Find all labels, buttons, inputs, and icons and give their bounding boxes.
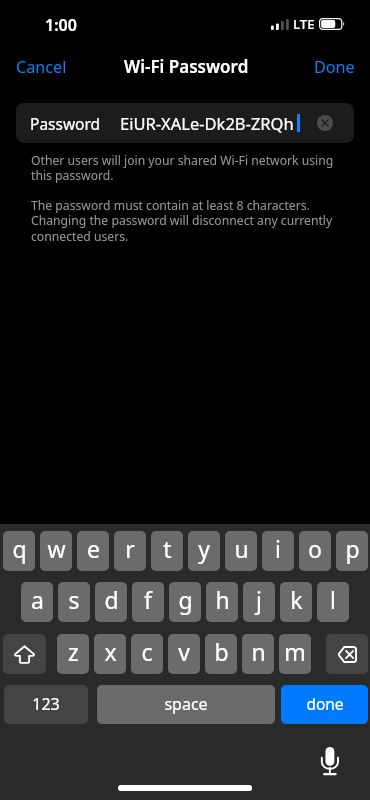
button[interactable]: f	[132, 582, 164, 622]
staticText: g	[178, 584, 193, 615]
button[interactable]: m	[279, 634, 311, 674]
button[interactable]: c	[131, 634, 163, 674]
staticText: Done	[314, 56, 355, 78]
button[interactable]: r	[114, 531, 146, 571]
staticText: o	[308, 533, 322, 564]
button[interactable]: Backspace	[326, 634, 368, 674]
staticText: Other users will join your shared Wi-Fi …	[31, 152, 337, 184]
button[interactable]: a	[21, 582, 53, 622]
staticText: Wi-Fi Password	[124, 55, 249, 78]
button[interactable]: z	[57, 634, 89, 674]
staticText: LTE	[293, 15, 315, 33]
button[interactable]: done	[281, 685, 368, 724]
button[interactable]: q	[3, 531, 35, 571]
staticText: b	[214, 636, 229, 667]
staticText: The password must contain at least 8 cha…	[31, 197, 337, 245]
staticText: f	[144, 584, 152, 615]
staticText: j	[256, 584, 262, 615]
button[interactable]: Cancel	[16, 56, 67, 78]
staticText: z	[68, 636, 79, 667]
staticText: Password	[30, 113, 101, 134]
button[interactable]: b	[205, 634, 237, 674]
button[interactable]: h	[206, 582, 238, 622]
button[interactable]: l	[317, 582, 349, 622]
button[interactable]: t	[151, 531, 183, 571]
button[interactable]: space	[97, 685, 275, 724]
staticText: m	[284, 636, 306, 667]
staticText: t	[163, 533, 172, 564]
button[interactable]: g	[169, 582, 201, 622]
staticText: i	[275, 533, 281, 564]
button[interactable]: u	[225, 531, 257, 571]
staticText: l	[330, 584, 336, 615]
staticText: space	[164, 693, 208, 715]
button[interactable]: d	[95, 582, 127, 622]
button[interactable]: Clear text	[317, 115, 333, 131]
staticText: 1:00	[45, 14, 77, 36]
staticText: d	[104, 584, 119, 615]
staticText: 123	[32, 693, 60, 715]
button[interactable]: 123	[4, 685, 88, 724]
staticText: w	[47, 533, 66, 564]
staticText: EiUR-XALe-Dk2B-ZRQh	[120, 112, 294, 134]
staticText: v	[178, 636, 190, 667]
button[interactable]: v	[168, 634, 200, 674]
button[interactable]: j	[243, 582, 275, 622]
staticText: a	[31, 584, 44, 615]
button[interactable]: e	[77, 531, 109, 571]
button[interactable]: w	[40, 531, 72, 571]
staticText: k	[290, 584, 303, 615]
button[interactable]: o	[299, 531, 331, 571]
staticText: p	[345, 533, 360, 564]
staticText: c	[141, 636, 153, 667]
button[interactable]: n	[242, 634, 274, 674]
button[interactable]: y	[188, 531, 220, 571]
staticText: u	[234, 533, 249, 564]
button[interactable]: x	[94, 634, 126, 674]
staticText: e	[87, 533, 100, 564]
button[interactable]: k	[280, 582, 312, 622]
staticText: x	[104, 636, 117, 667]
staticText: r	[125, 533, 135, 564]
button[interactable]: p	[336, 531, 368, 571]
button[interactable]: Shift	[3, 634, 46, 674]
staticText: h	[215, 584, 230, 615]
button[interactable]: s	[58, 582, 90, 622]
button[interactable]: Done	[314, 56, 355, 78]
staticText: y	[198, 533, 210, 564]
button[interactable]: i	[262, 531, 294, 571]
button[interactable]: Password	[16, 103, 354, 143]
staticText: Cancel	[16, 56, 67, 78]
staticText: s	[68, 584, 80, 615]
staticText: done	[306, 693, 344, 714]
staticText: q	[12, 533, 27, 564]
button[interactable]: Dictation	[320, 746, 340, 776]
staticText: n	[251, 636, 266, 667]
